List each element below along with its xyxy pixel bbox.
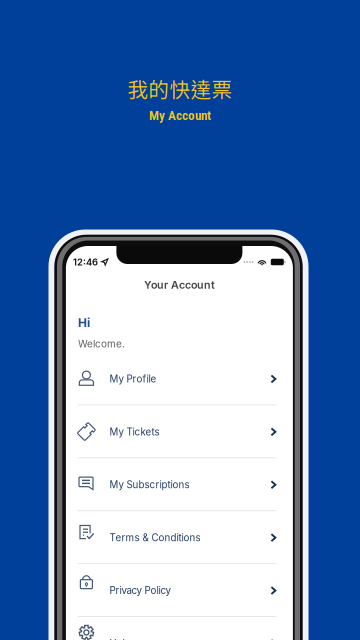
button[interactable]: Help bbox=[66, 617, 293, 640]
button[interactable]: Privacy Policy bbox=[66, 564, 293, 617]
staticText: My Account bbox=[149, 108, 211, 123]
staticText: Terms & Conditions bbox=[109, 532, 200, 544]
button[interactable]: My Profile bbox=[66, 352, 293, 405]
staticText: Hi bbox=[78, 315, 90, 330]
staticText: My Tickets bbox=[109, 426, 159, 438]
staticText: My Profile bbox=[109, 373, 156, 385]
staticText: Welcome. bbox=[78, 338, 125, 350]
staticText: Your Account bbox=[144, 278, 215, 291]
button[interactable]: My Tickets bbox=[66, 405, 293, 458]
staticText: Help bbox=[109, 638, 130, 640]
staticText: 我的快達票 bbox=[127, 73, 232, 103]
button[interactable]: Terms & Conditions bbox=[66, 511, 293, 564]
button[interactable]: My Subscriptions bbox=[66, 458, 293, 511]
staticText: 12:46 bbox=[73, 256, 98, 268]
staticText: My Subscriptions bbox=[109, 479, 189, 491]
staticText: Privacy Policy bbox=[109, 585, 170, 596]
